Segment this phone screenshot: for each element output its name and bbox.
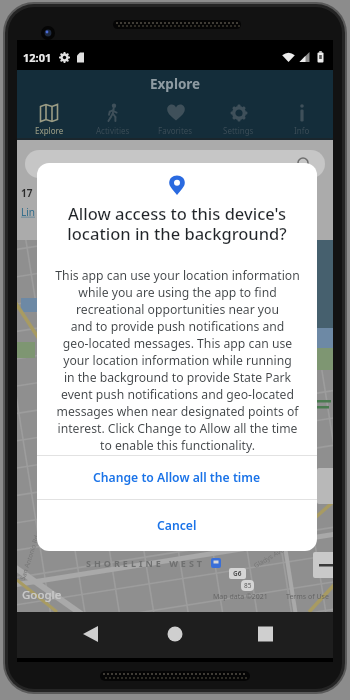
- staticText: SHORELINE WEST: [86, 557, 206, 569]
- staticText: Settings: [223, 125, 254, 136]
- staticText: Favorites: [158, 125, 193, 136]
- staticText: Cancel: [157, 517, 197, 534]
- button[interactable]: Lin: [21, 205, 35, 219]
- button[interactable]: Cancel: [37, 500, 317, 551]
- button[interactable]: [25, 150, 325, 178]
- staticText: Terms of Use: [286, 592, 329, 602]
- staticText: Google: [22, 587, 62, 603]
- staticText: Change to Allow all the time: [93, 469, 261, 486]
- staticText: San Antonio Rd: [18, 534, 41, 581]
- staticText: 17: [21, 186, 33, 200]
- staticText: Explore: [35, 125, 64, 136]
- button[interactable]: Change to Allow all the time: [37, 456, 317, 499]
- staticText: Allow access to this device's location i…: [67, 202, 287, 245]
- staticText: Activities: [96, 125, 130, 136]
- button[interactable]: Activities: [81, 98, 144, 140]
- button[interactable]: Explore: [17, 98, 81, 140]
- button[interactable]: Favorites: [144, 98, 207, 140]
- staticText: Explore: [150, 75, 201, 93]
- staticText: G6: [233, 569, 242, 578]
- button[interactable]: Info: [270, 98, 333, 140]
- staticText: 85: [244, 581, 252, 590]
- staticText: Map data ©2021: [213, 592, 268, 602]
- button[interactable]: Settings: [207, 98, 270, 140]
- staticText: 12:01: [23, 50, 52, 65]
- staticText: This app can use your location informati…: [55, 267, 300, 454]
- staticText: Gladys Ave: [252, 545, 286, 570]
- staticText: Info: [294, 125, 310, 136]
